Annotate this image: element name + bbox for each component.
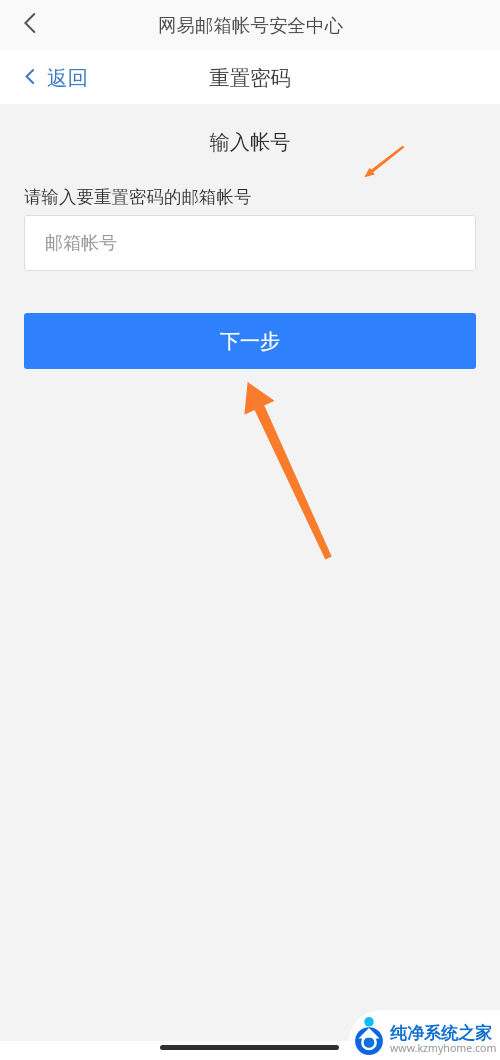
button[interactable]: 邮箱帐号 [24, 215, 476, 271]
button[interactable]: 返回 [0, 50, 96, 104]
button[interactable]: 下一步 [24, 313, 476, 369]
staticText: 纯净系统之家 [390, 1023, 492, 1044]
staticText: 网易邮箱帐号安全中心 [158, 14, 343, 37]
staticText: 返回 [47, 65, 88, 91]
staticText: 输入帐号 [0, 129, 500, 155]
staticText: 请输入要重置密码的邮箱帐号 [24, 186, 252, 208]
staticText: 下一步 [220, 329, 280, 354]
staticText: 邮箱帐号 [45, 232, 117, 255]
button[interactable]: Back [0, 0, 56, 50]
staticText: www.kzmyhome.com [390, 1041, 497, 1055]
staticText: 重置密码 [209, 65, 291, 91]
